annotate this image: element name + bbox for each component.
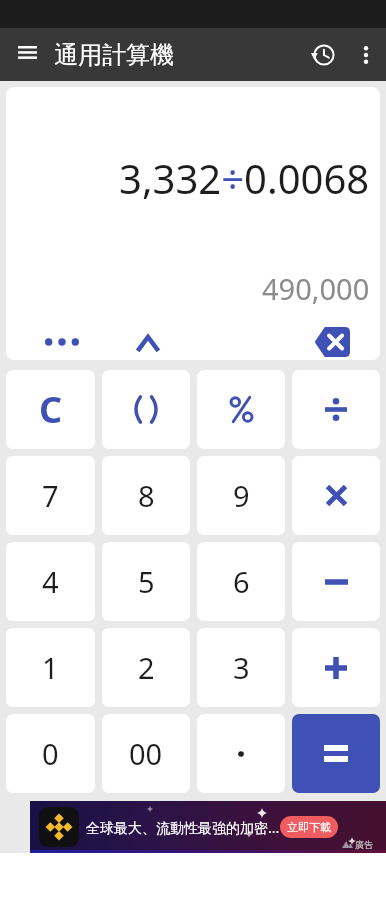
button[interactable]: [289, 324, 374, 360]
staticText: 1: [42, 648, 59, 687]
staticText: 00: [129, 734, 163, 773]
staticText: 立即下載: [287, 820, 331, 834]
staticText: 全球最大、流動性最強的加密...: [86, 818, 280, 837]
staticText: C: [39, 385, 63, 434]
button[interactable]: 1: [6, 628, 95, 707]
button[interactable]: 7: [6, 456, 95, 535]
button[interactable]: [292, 456, 380, 535]
button[interactable]: [346, 28, 386, 81]
button[interactable]: 5: [102, 542, 190, 621]
button[interactable]: [197, 370, 285, 449]
staticText: 7: [42, 476, 59, 515]
button[interactable]: 4: [6, 542, 95, 621]
button[interactable]: [292, 714, 380, 793]
button[interactable]: 0: [6, 714, 95, 793]
button[interactable]: [197, 714, 285, 793]
button[interactable]: [102, 370, 190, 449]
button[interactable]: 立即下載: [280, 816, 338, 838]
staticText: 5: [138, 562, 155, 601]
staticText: 3,332÷0.0068: [119, 151, 370, 205]
button[interactable]: [292, 370, 380, 449]
staticText: 8: [138, 476, 155, 515]
staticText: 0: [42, 734, 59, 773]
button[interactable]: 00: [102, 714, 190, 793]
button[interactable]: [292, 628, 380, 707]
button[interactable]: [0, 28, 54, 81]
button[interactable]: 6: [197, 542, 285, 621]
staticText: 6: [233, 562, 250, 601]
staticText: 2: [138, 648, 155, 687]
button[interactable]: [300, 32, 346, 78]
button[interactable]: [12, 324, 98, 360]
staticText: 4: [42, 562, 59, 601]
button[interactable]: 全球最大、流動性最強的加密...: [30, 801, 386, 853]
button[interactable]: 8: [102, 456, 190, 535]
staticText: 490,000: [262, 269, 370, 308]
staticText: 3: [233, 648, 250, 687]
staticText: 9: [233, 476, 250, 515]
staticText: 廣告: [355, 839, 373, 850]
button[interactable]: 3: [197, 628, 285, 707]
button[interactable]: [105, 324, 190, 360]
button[interactable]: C: [6, 370, 95, 449]
button[interactable]: [292, 542, 380, 621]
button[interactable]: 9: [197, 456, 285, 535]
button[interactable]: 2: [102, 628, 190, 707]
staticText: 通用計算機: [54, 40, 174, 70]
